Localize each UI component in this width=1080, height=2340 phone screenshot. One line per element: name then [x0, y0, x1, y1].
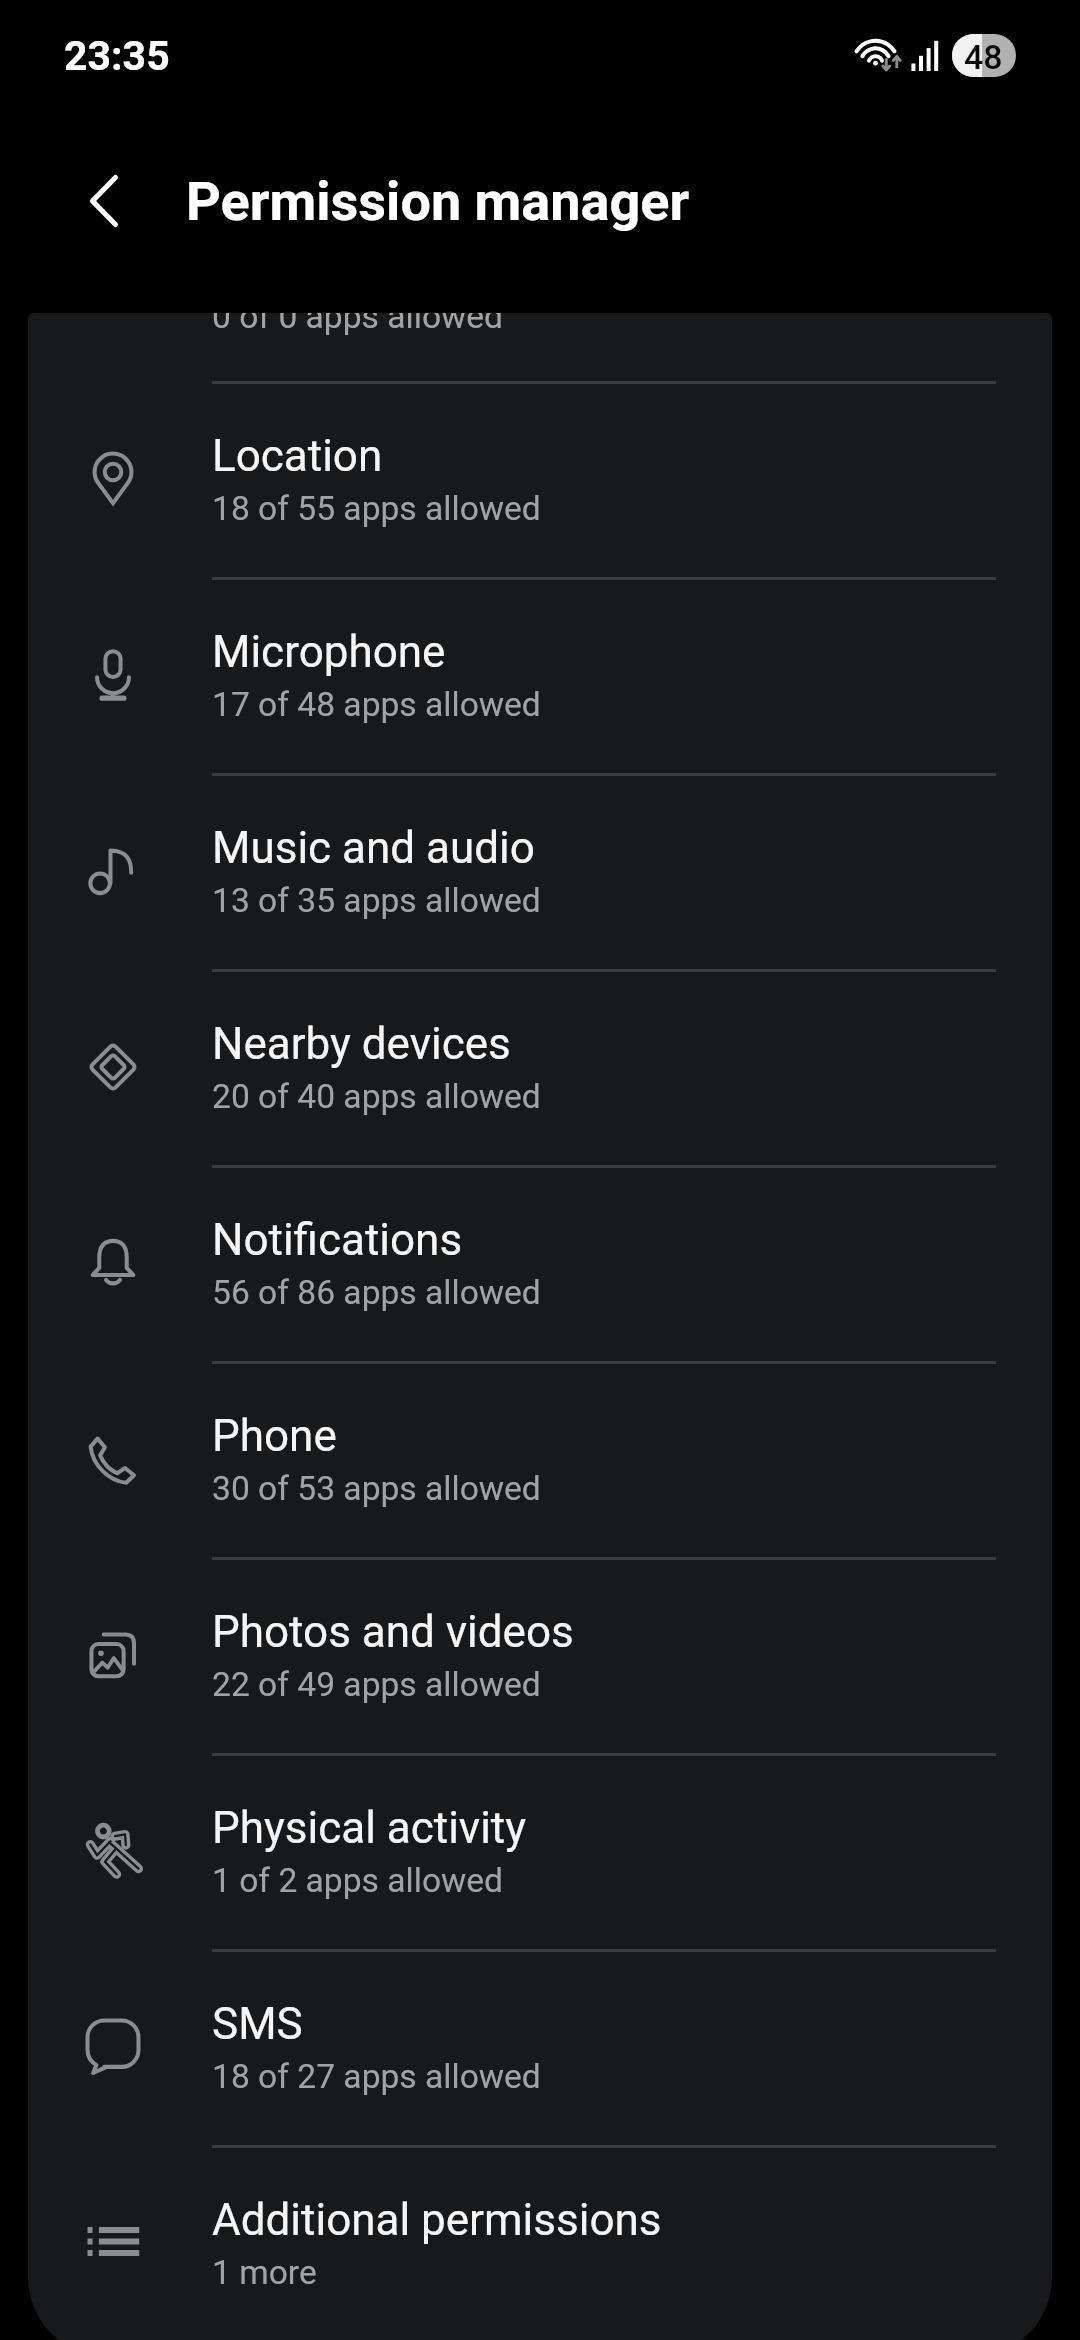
button[interactable]: Location — [28, 381, 1052, 577]
button[interactable]: Microphone — [28, 577, 1052, 773]
staticText: 30 of 53 apps allowed — [212, 1469, 541, 1508]
staticText: 1 more — [212, 2253, 317, 2292]
button[interactable]: SMS — [28, 1949, 1052, 2145]
staticText: Additional permissions — [212, 2194, 662, 2246]
staticText: 17 of 48 apps allowed — [212, 685, 541, 724]
staticText: Nearby devices — [212, 1018, 511, 1070]
staticText: 22 of 49 apps allowed — [212, 1665, 541, 1704]
staticText: 23:35 — [64, 32, 170, 80]
staticText: Photos and videos — [212, 1606, 574, 1658]
staticText: SMS — [212, 1998, 303, 2050]
staticText: Physical activity — [212, 1802, 527, 1854]
button[interactable]: Photos and videos — [28, 1557, 1052, 1753]
button[interactable]: Back — [54, 151, 154, 251]
button[interactable]: Nearby devices — [28, 969, 1052, 1165]
staticText: Permission manager — [186, 170, 690, 233]
button[interactable]: Music and audio — [28, 773, 1052, 969]
staticText: Notifications — [212, 1214, 463, 1266]
staticText: Phone — [212, 1410, 337, 1462]
staticText: 20 of 40 apps allowed — [212, 1077, 541, 1116]
button[interactable]: Notifications — [28, 1165, 1052, 1361]
staticText: 0 of 0 apps allowed — [212, 313, 504, 336]
staticText: 13 of 35 apps allowed — [212, 881, 541, 920]
staticText: Location — [212, 430, 383, 482]
staticText: Music and audio — [212, 822, 535, 874]
staticText: 18 of 55 apps allowed — [212, 489, 541, 528]
staticText: 48 — [964, 37, 1003, 77]
staticText: 18 of 27 apps allowed — [212, 2057, 541, 2096]
staticText: 1 of 2 apps allowed — [212, 1861, 504, 1900]
button[interactable]: Phone — [28, 1361, 1052, 1557]
staticText: 56 of 86 apps allowed — [212, 1273, 541, 1312]
button[interactable]: Additional permissions — [28, 2145, 1052, 2340]
staticText: Microphone — [212, 626, 446, 678]
button[interactable]: Physical activity — [28, 1753, 1052, 1949]
